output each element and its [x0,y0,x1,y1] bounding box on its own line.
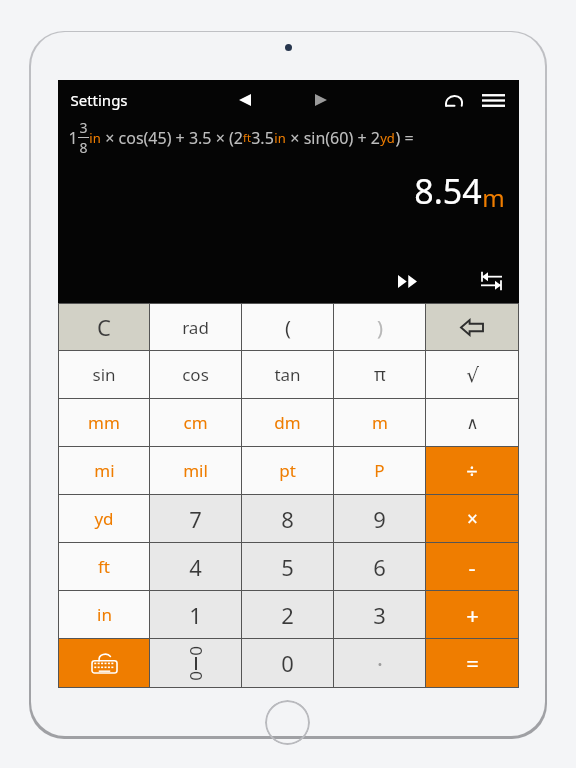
button[interactable]: √ [426,351,518,398]
button[interactable]: mm [59,399,149,446]
button[interactable]: Next [304,83,338,117]
staticText: mil [183,459,208,482]
staticText: · [377,648,383,678]
staticText: ft [243,130,251,145]
staticText: 3 [373,600,386,630]
button[interactable]: 5 [242,543,333,590]
staticText: mm [88,411,120,434]
button[interactable]: P [334,447,425,494]
button[interactable]: 3 [334,591,425,638]
button[interactable]: - [426,543,518,590]
staticText: 0 [281,648,294,678]
button[interactable]: × [426,495,518,542]
staticText: ) = [395,127,414,149]
button[interactable]: mi [59,447,149,494]
staticText: × cos(45) + 3.5 × (2 [101,127,243,149]
button[interactable]: π [334,351,425,398]
staticText: Settings [70,90,128,110]
button[interactable]: C [59,304,149,350]
button[interactable]: ( [242,304,333,350]
staticText: yd [94,507,114,530]
staticText: in [274,129,286,147]
staticText: yd [380,129,395,147]
button[interactable]: Menu [473,80,513,120]
button[interactable]: 8 [242,495,333,542]
button[interactable]: Fraction [150,639,241,687]
button[interactable]: 7 [150,495,241,542]
staticText: 8.54 [414,168,482,214]
staticText: rad [182,316,209,339]
button[interactable]: ∧ [426,399,518,446]
button[interactable]: ) [334,304,425,350]
staticText: sin [92,363,116,386]
button[interactable]: Keyboard [59,639,149,687]
staticText: ÷ [466,457,478,484]
button[interactable]: Previous [228,83,262,117]
staticText: m [372,411,388,434]
button[interactable]: = [426,639,518,687]
button[interactable]: 9 [334,495,425,542]
staticText: 8 [281,504,294,534]
button[interactable]: Home [265,700,310,745]
staticText: tan [274,363,301,386]
staticText: m [482,181,505,214]
button[interactable]: 2 [242,591,333,638]
button[interactable]: Undo [435,81,473,119]
button[interactable]: 4 [150,543,241,590]
staticText: cos [182,363,209,386]
button[interactable]: in [59,591,149,638]
button[interactable]: Swap units [471,261,511,301]
staticText: C [97,312,111,342]
staticText: ∧ [466,413,479,433]
staticText: 8 [79,138,88,157]
button[interactable]: Settings [66,84,132,116]
staticText: × [467,506,478,532]
staticText: cm [183,411,208,434]
staticText: 0 [184,671,207,681]
button[interactable]: ÷ [426,447,518,494]
button[interactable]: 6 [334,543,425,590]
staticText: P [374,459,385,482]
staticText: pt [279,459,296,482]
button[interactable]: m [334,399,425,446]
staticText: mi [94,459,115,482]
staticText: 9 [373,504,386,534]
button[interactable]: ft [59,543,149,590]
button[interactable]: yd [59,495,149,542]
button[interactable]: Fast forward [387,261,427,301]
staticText: - [468,552,476,582]
staticText: 0 [184,646,207,656]
staticText: in [97,603,112,626]
staticText: √ [466,363,479,386]
button[interactable]: pt [242,447,333,494]
staticText: in [89,129,101,147]
staticText: 4 [189,552,202,582]
button[interactable]: 1 [150,591,241,638]
staticText: dm [274,411,301,434]
button[interactable]: 0 [242,639,333,687]
staticText: ft [98,555,110,578]
staticText: + [466,600,479,630]
staticText: 1 [68,127,78,149]
staticText: 7 [189,504,202,534]
staticText: π [374,362,386,387]
staticText: = [466,648,479,678]
button[interactable]: Backspace [426,304,518,350]
staticText: 1 [189,600,202,630]
button[interactable]: cos [150,351,241,398]
staticText: 2 [281,600,294,630]
button[interactable]: cm [150,399,241,446]
button[interactable]: sin [59,351,149,398]
button[interactable]: rad [150,304,241,350]
staticText: 6 [373,552,386,582]
staticText: ( [285,314,291,341]
button[interactable]: + [426,591,518,638]
staticText: 3.5 [251,127,274,149]
button[interactable]: tan [242,351,333,398]
staticText: ) [377,314,383,341]
button[interactable]: mil [150,447,241,494]
staticText: 5 [281,552,294,582]
staticText: × sin(60) + 2 [286,127,380,149]
button[interactable]: dm [242,399,333,446]
